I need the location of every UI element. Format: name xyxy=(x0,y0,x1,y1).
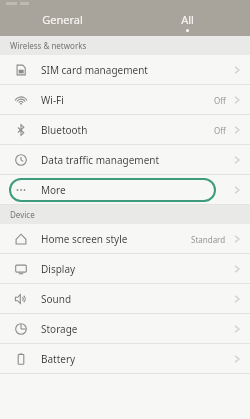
button[interactable]: Battery xyxy=(0,344,250,374)
button[interactable]: More xyxy=(0,175,250,205)
staticText: All xyxy=(181,12,194,27)
staticText: Battery xyxy=(41,352,232,366)
staticText: Standard xyxy=(191,234,226,245)
other: Open More xyxy=(232,184,242,196)
button[interactable]: Wi-Fi xyxy=(0,85,250,115)
button[interactable]: Bluetooth xyxy=(0,115,250,145)
button[interactable]: Display xyxy=(0,254,250,284)
other: Open Bluetooth xyxy=(232,124,242,136)
staticText: Off xyxy=(214,95,226,106)
other: Open Home screen style xyxy=(232,233,242,245)
other: Open Data traffic management xyxy=(232,154,242,166)
other: Open Sound xyxy=(232,293,242,305)
staticText: Device xyxy=(10,209,35,220)
staticText: Sound xyxy=(41,292,232,306)
other: Open Wi-Fi xyxy=(232,94,242,106)
other: Open Display xyxy=(232,263,242,275)
other: Open SIM card management xyxy=(232,64,242,76)
staticText: Storage xyxy=(41,322,232,336)
button[interactable]: Data traffic management xyxy=(0,145,250,175)
other: Open Battery xyxy=(232,353,242,365)
staticText: Data traffic management xyxy=(41,153,232,167)
button[interactable]: General xyxy=(0,8,125,36)
staticText: Off xyxy=(214,125,226,136)
staticText: Wi-Fi xyxy=(41,93,214,107)
button[interactable]: SIM card management xyxy=(0,55,250,85)
button[interactable]: Storage xyxy=(0,314,250,344)
staticText: Display xyxy=(41,262,232,276)
staticText: More xyxy=(41,183,232,197)
button[interactable]: Home screen style xyxy=(0,224,250,254)
staticText: SIM card management xyxy=(41,63,232,77)
staticText: Wireless & networks xyxy=(10,40,87,51)
other: Open Storage xyxy=(232,323,242,335)
staticText: Home screen style xyxy=(41,232,191,246)
button[interactable]: All xyxy=(125,8,250,36)
staticText: Bluetooth xyxy=(41,123,214,137)
button[interactable]: Sound xyxy=(0,284,250,314)
staticText: General xyxy=(42,12,83,27)
